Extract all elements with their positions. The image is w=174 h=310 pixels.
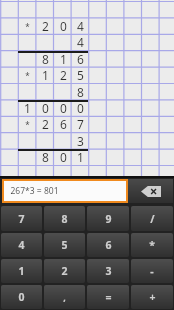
staticText: 9 — [105, 212, 112, 226]
button[interactable]: 9 — [87, 206, 129, 231]
button[interactable]: 4 — [1, 233, 42, 257]
staticText: + — [149, 290, 156, 304]
button[interactable]: * — [131, 233, 173, 257]
staticText: 1 — [60, 51, 67, 67]
staticText: 6 — [60, 116, 67, 132]
staticText: 2 — [60, 67, 67, 83]
button[interactable]: + — [131, 285, 173, 309]
staticText: 0 — [60, 149, 67, 165]
button[interactable]: 0 — [1, 285, 42, 309]
staticText: 5 — [61, 238, 68, 252]
staticText: 4 — [18, 238, 25, 252]
button[interactable]: 5 — [44, 233, 85, 257]
staticText: - — [150, 264, 154, 278]
staticText: , — [63, 291, 66, 303]
staticText: 5 — [77, 67, 84, 83]
staticText: * — [25, 21, 30, 32]
staticText: 4 — [77, 34, 84, 50]
button[interactable]: 2 — [44, 259, 85, 283]
button[interactable]: 3 — [87, 259, 129, 283]
staticText: 0 — [18, 290, 25, 304]
staticText: 1 — [24, 100, 31, 116]
staticText: 8 — [77, 84, 84, 100]
staticText: 6 — [77, 51, 84, 67]
staticText: 4 — [77, 18, 84, 34]
button[interactable]: 7 — [1, 206, 42, 231]
button[interactable]: 8 — [44, 206, 85, 231]
button[interactable]: 6 — [87, 233, 129, 257]
staticText: 6 — [105, 238, 112, 252]
button[interactable]: - — [131, 259, 173, 283]
button[interactable]: 267*3 = 801 — [4, 181, 126, 201]
staticText: 0 — [60, 18, 67, 34]
button[interactable]: , — [44, 285, 85, 309]
staticText: 1 — [42, 67, 49, 83]
staticText: 1 — [18, 264, 25, 278]
staticText: 3 — [77, 133, 84, 149]
staticText: 8 — [42, 149, 49, 165]
button[interactable]: = — [87, 285, 129, 309]
button[interactable]: / — [131, 206, 173, 231]
staticText: 8 — [61, 212, 68, 226]
staticText: 2 — [42, 18, 49, 34]
button[interactable]: 1 — [1, 259, 42, 283]
button[interactable]: Backspace — [128, 179, 173, 203]
staticText: 8 — [42, 51, 49, 67]
staticText: / — [150, 212, 155, 226]
staticText: 2 — [42, 116, 49, 132]
staticText: 3 — [105, 264, 112, 278]
staticText: 1 — [77, 149, 84, 165]
staticText: 267*3 = 801 — [10, 185, 59, 197]
staticText: 0 — [60, 100, 67, 116]
staticText: 7 — [77, 116, 84, 132]
staticText: * — [149, 238, 155, 252]
staticText: 2 — [61, 264, 68, 278]
staticText: * — [25, 70, 30, 81]
staticText: * — [25, 119, 30, 130]
staticText: 0 — [42, 100, 49, 116]
staticText: = — [105, 290, 112, 304]
staticText: 0 — [77, 100, 84, 116]
staticText: 7 — [18, 212, 25, 226]
